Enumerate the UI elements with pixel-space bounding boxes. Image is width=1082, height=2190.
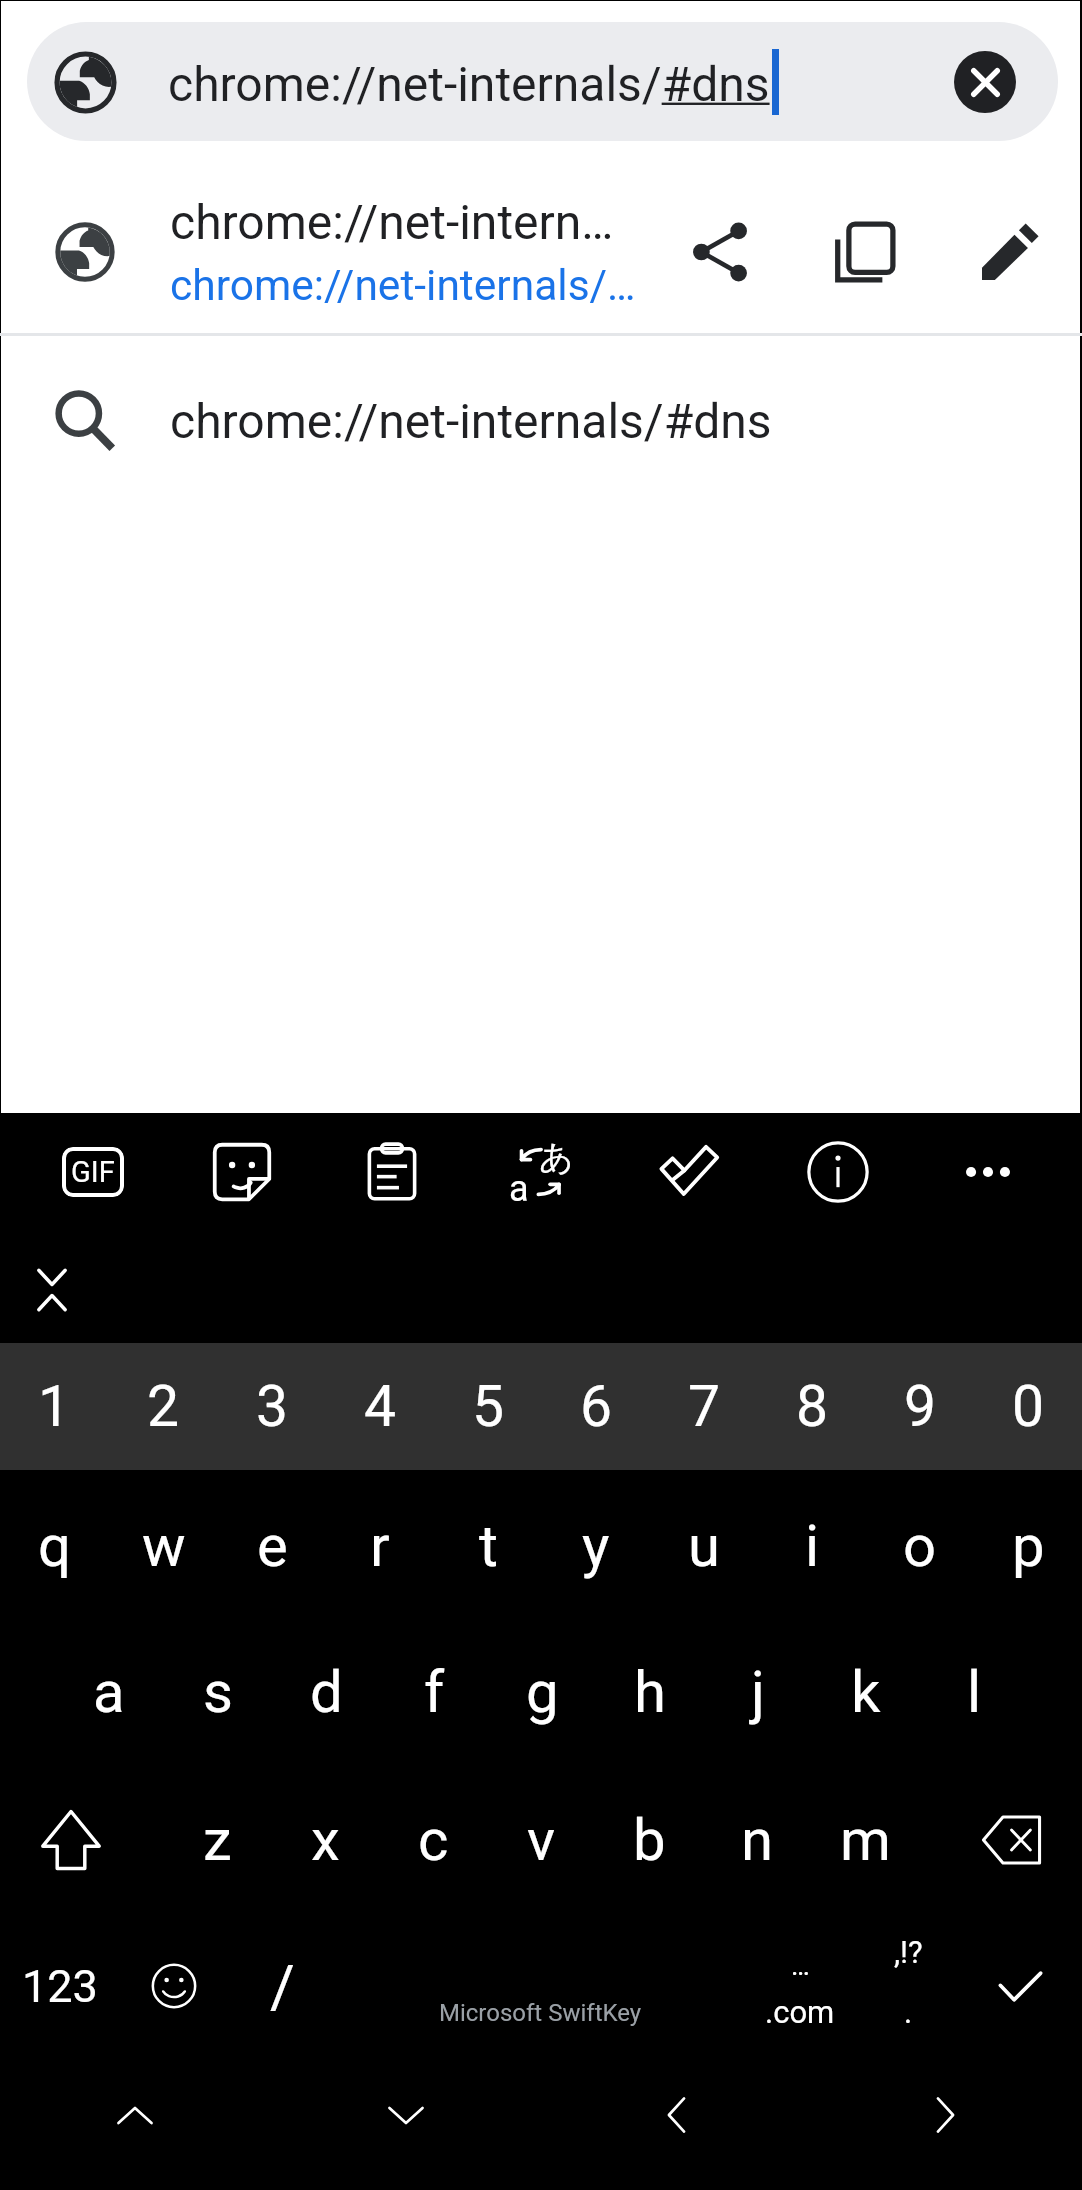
button[interactable]: a bbox=[54, 1620, 163, 1764]
button[interactable]: j bbox=[704, 1620, 812, 1764]
button[interactable]: 9 bbox=[866, 1343, 974, 1470]
staticText: a bbox=[509, 1168, 529, 1210]
staticText: chrome://net-internals/#dns bbox=[168, 56, 770, 112]
staticText: l bbox=[967, 1658, 982, 1726]
staticText: .com bbox=[765, 1994, 835, 2030]
button[interactable]: Move right bbox=[885, 2055, 1005, 2175]
button[interactable]: 0 bbox=[974, 1343, 1082, 1470]
button[interactable]: d bbox=[272, 1620, 380, 1764]
button[interactable]: x bbox=[271, 1768, 379, 1912]
button[interactable]: k bbox=[812, 1620, 920, 1764]
button[interactable]: chrome://net-intern… bbox=[0, 170, 1082, 334]
button[interactable]: y bbox=[542, 1474, 650, 1618]
button[interactable]: f bbox=[380, 1620, 488, 1764]
button[interactable]: 1 bbox=[0, 1343, 109, 1470]
staticText: 7 bbox=[688, 1373, 721, 1440]
button[interactable]: 7 bbox=[650, 1343, 758, 1470]
button[interactable]: / bbox=[222, 1926, 342, 2046]
button[interactable]: Clear text bbox=[954, 51, 1016, 113]
staticText: p bbox=[1012, 1512, 1045, 1580]
button[interactable]: w bbox=[109, 1474, 218, 1618]
staticText: chrome://net-internals/#dns bbox=[170, 393, 772, 449]
button[interactable]: Translate bbox=[484, 1116, 596, 1228]
staticText: 9 bbox=[904, 1373, 937, 1440]
staticText: ,!? bbox=[894, 1934, 923, 1970]
button[interactable]: 5 bbox=[434, 1343, 542, 1470]
staticText: 6 bbox=[580, 1373, 613, 1440]
button[interactable]: b bbox=[595, 1768, 703, 1912]
staticText: v bbox=[527, 1806, 556, 1874]
button[interactable]: chrome://net-internals/#dns bbox=[0, 336, 1082, 506]
staticText: chrome://net-internals/… bbox=[170, 261, 636, 311]
staticText: c bbox=[418, 1806, 449, 1874]
button[interactable]: Move left bbox=[616, 2055, 736, 2175]
button[interactable]: t bbox=[434, 1474, 542, 1618]
button[interactable]: GIF bbox=[37, 1116, 149, 1228]
button[interactable]: p bbox=[974, 1474, 1082, 1618]
staticText: Microsoft SwiftKey bbox=[439, 1999, 642, 2027]
button[interactable]: Shift bbox=[0, 1768, 163, 1912]
button[interactable]: More bbox=[932, 1116, 1044, 1228]
button[interactable]: n bbox=[703, 1768, 811, 1912]
staticText: 3 bbox=[256, 1373, 289, 1440]
button[interactable]: u bbox=[650, 1474, 758, 1618]
button[interactable]: 8 bbox=[758, 1343, 866, 1470]
button[interactable]: Move down bbox=[346, 2055, 466, 2175]
staticText: z bbox=[203, 1806, 232, 1874]
staticText: s bbox=[203, 1658, 233, 1726]
button[interactable]: v bbox=[487, 1768, 595, 1912]
staticText: e bbox=[257, 1512, 288, 1580]
button[interactable]: 6 bbox=[542, 1343, 650, 1470]
button[interactable]: Clipboard bbox=[336, 1116, 448, 1228]
staticText: t bbox=[479, 1512, 498, 1580]
button[interactable]: 2 bbox=[109, 1343, 218, 1470]
button[interactable]: Edit bbox=[937, 170, 1082, 334]
button[interactable]: 4 bbox=[326, 1343, 434, 1470]
staticText: f bbox=[424, 1658, 445, 1726]
staticText: GIF bbox=[71, 1155, 115, 1189]
staticText: … bbox=[791, 1949, 810, 1982]
staticText: x bbox=[311, 1806, 340, 1874]
button[interactable]: ,!? bbox=[848, 1926, 968, 2046]
button[interactable]: Info bbox=[782, 1116, 894, 1228]
staticText: 1 bbox=[38, 1373, 71, 1440]
staticText: 2 bbox=[147, 1373, 180, 1440]
staticText: . bbox=[904, 1994, 913, 2030]
button[interactable]: Collapse keyboard bbox=[0, 1235, 107, 1345]
button[interactable]: c bbox=[379, 1768, 487, 1912]
button[interactable]: chrome://net-internals/#dns bbox=[27, 22, 1058, 141]
button[interactable]: Move up bbox=[75, 2055, 195, 2175]
staticText: / bbox=[270, 1951, 295, 2021]
button[interactable]: 123 bbox=[0, 1926, 120, 2046]
button[interactable]: i bbox=[758, 1474, 866, 1618]
button[interactable]: … bbox=[740, 1926, 860, 2046]
button[interactable]: q bbox=[0, 1474, 109, 1618]
staticText: k bbox=[851, 1658, 881, 1726]
button[interactable]: Emoji bbox=[114, 1926, 234, 2046]
button[interactable]: s bbox=[163, 1620, 272, 1764]
button[interactable]: l bbox=[920, 1620, 1028, 1764]
button[interactable]: Enter bbox=[960, 1926, 1080, 2046]
button[interactable]: m bbox=[811, 1768, 919, 1912]
button[interactable]: 3 bbox=[218, 1343, 326, 1470]
button[interactable]: Microsoft SwiftKey bbox=[370, 1926, 710, 2046]
staticText: i bbox=[805, 1512, 820, 1580]
staticText: y bbox=[582, 1512, 610, 1580]
staticText: w bbox=[142, 1512, 186, 1580]
button[interactable]: o bbox=[866, 1474, 974, 1618]
button[interactable]: h bbox=[596, 1620, 704, 1764]
staticText: q bbox=[38, 1512, 71, 1580]
button[interactable]: z bbox=[163, 1768, 271, 1912]
staticText: 0 bbox=[1012, 1373, 1045, 1440]
button[interactable]: Tasks bbox=[633, 1116, 745, 1228]
button[interactable]: r bbox=[326, 1474, 434, 1618]
button[interactable]: Share bbox=[647, 170, 792, 334]
button[interactable]: g bbox=[488, 1620, 596, 1764]
staticText: 8 bbox=[796, 1373, 829, 1440]
staticText: b bbox=[633, 1806, 666, 1874]
button[interactable]: Copy bbox=[792, 170, 937, 334]
button[interactable]: e bbox=[218, 1474, 326, 1618]
button[interactable]: Backspace bbox=[919, 1768, 1082, 1912]
button[interactable]: Stickers bbox=[186, 1116, 298, 1228]
staticText: 4 bbox=[364, 1373, 397, 1440]
